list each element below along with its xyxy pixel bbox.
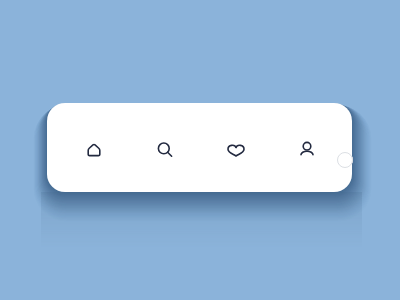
button[interactable]: Profile bbox=[285, 128, 329, 172]
button[interactable]: Indicator bbox=[337, 152, 353, 168]
button[interactable]: Search bbox=[143, 128, 187, 172]
button[interactable]: Home bbox=[72, 128, 116, 172]
button[interactable]: Favorites bbox=[214, 128, 258, 172]
